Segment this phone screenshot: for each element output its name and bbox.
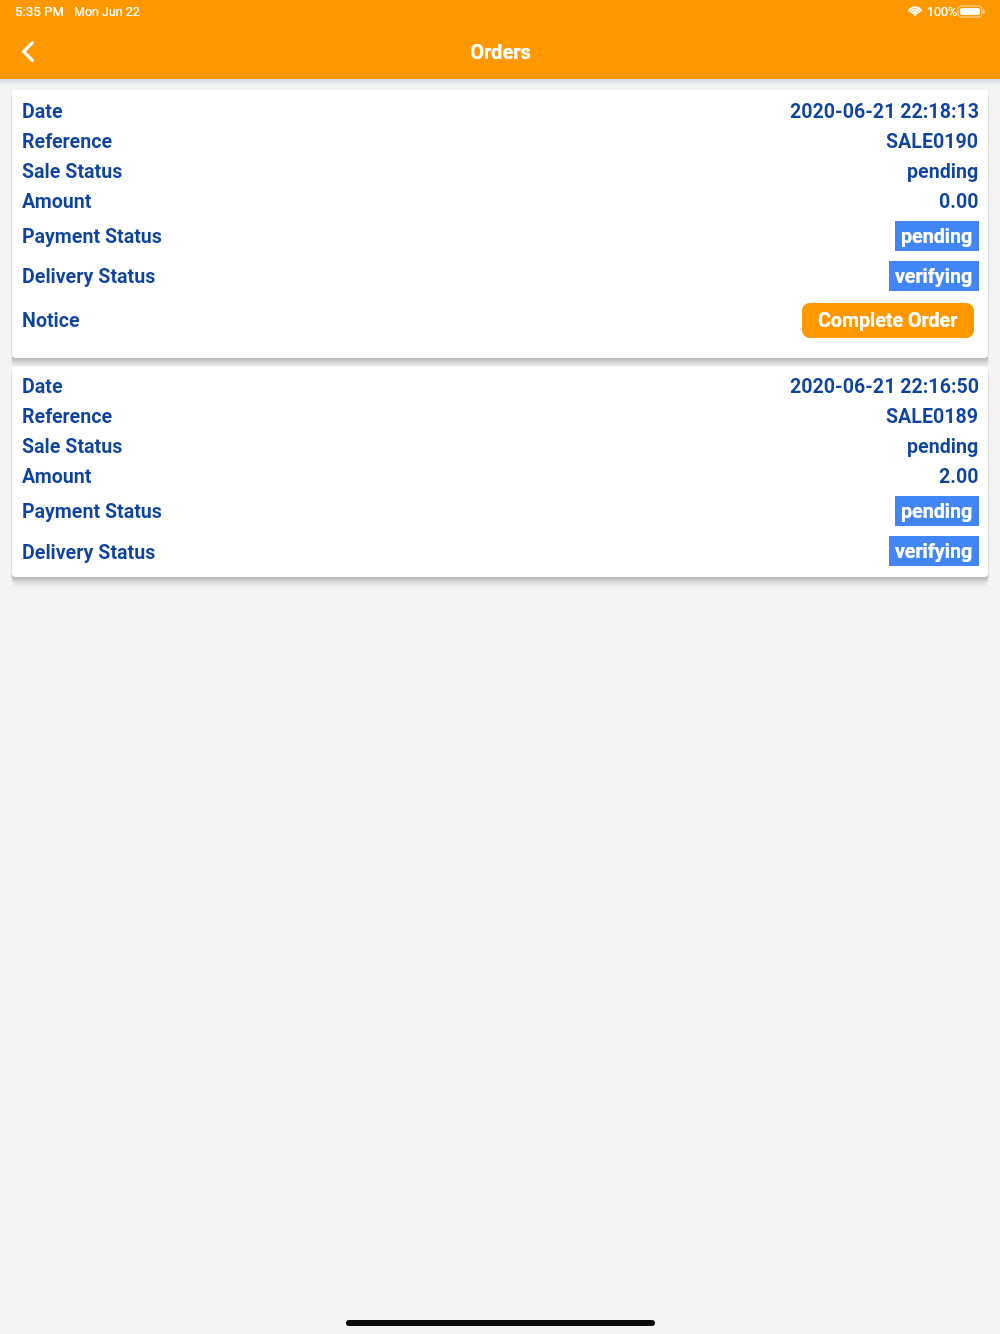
- staticText: 5:35 PM: [15, 4, 64, 20]
- button[interactable]: Date: [12, 90, 988, 358]
- button[interactable]: Amount: [22, 186, 979, 216]
- staticText: Reference: [22, 130, 113, 153]
- staticText: pending: [901, 225, 973, 248]
- staticText: Delivery Status: [22, 265, 156, 288]
- button[interactable]: Complete Order: [802, 303, 974, 338]
- staticText: 2020-06-21 22:18:13: [790, 100, 979, 123]
- staticText: Amount: [22, 465, 92, 488]
- button[interactable]: Amount: [22, 461, 979, 491]
- button[interactable]: Date: [22, 371, 979, 401]
- staticText: SALE0189: [886, 405, 979, 428]
- button[interactable]: Sale Status: [22, 431, 979, 461]
- staticText: Payment Status: [22, 225, 162, 248]
- staticText: Sale Status: [22, 160, 123, 183]
- staticText: Amount: [22, 190, 92, 213]
- staticText: Reference: [22, 405, 113, 428]
- button[interactable]: Reference: [22, 401, 979, 431]
- button[interactable]: Date: [22, 96, 979, 126]
- button[interactable]: Delivery Status: [22, 532, 979, 572]
- button[interactable]: verifying: [889, 536, 979, 566]
- button[interactable]: verifying: [889, 261, 979, 291]
- staticText: Complete Order: [818, 309, 958, 332]
- staticText: pending: [901, 500, 973, 523]
- button[interactable]: Sale Status: [22, 156, 979, 186]
- button[interactable]: pending: [895, 496, 979, 526]
- staticText: Mon Jun 22: [74, 4, 140, 19]
- button[interactable]: Payment Status: [22, 491, 979, 532]
- button[interactable]: Delivery Status: [22, 257, 979, 296]
- staticText: Payment Status: [22, 500, 162, 523]
- staticText: 2020-06-21 22:16:50: [790, 375, 979, 398]
- staticText: pending: [907, 435, 979, 458]
- button[interactable]: pending: [895, 221, 979, 251]
- staticText: Orders: [470, 40, 531, 63]
- staticText: 2.00: [939, 465, 979, 488]
- button[interactable]: Notice: [22, 296, 979, 344]
- button[interactable]: Back: [0, 26, 52, 78]
- staticText: pending: [907, 160, 979, 183]
- button[interactable]: Date: [12, 366, 988, 577]
- staticText: verifying: [895, 265, 973, 288]
- staticText: 0.00: [939, 190, 979, 213]
- staticText: SALE0190: [886, 130, 979, 153]
- staticText: Sale Status: [22, 435, 123, 458]
- staticText: Delivery Status: [22, 541, 156, 564]
- staticText: Notice: [22, 309, 80, 332]
- staticText: Date: [22, 375, 63, 398]
- button[interactable]: Payment Status: [22, 216, 979, 257]
- button[interactable]: Reference: [22, 126, 979, 156]
- staticText: 100%: [927, 4, 958, 19]
- staticText: verifying: [895, 540, 973, 563]
- staticText: Date: [22, 100, 63, 123]
